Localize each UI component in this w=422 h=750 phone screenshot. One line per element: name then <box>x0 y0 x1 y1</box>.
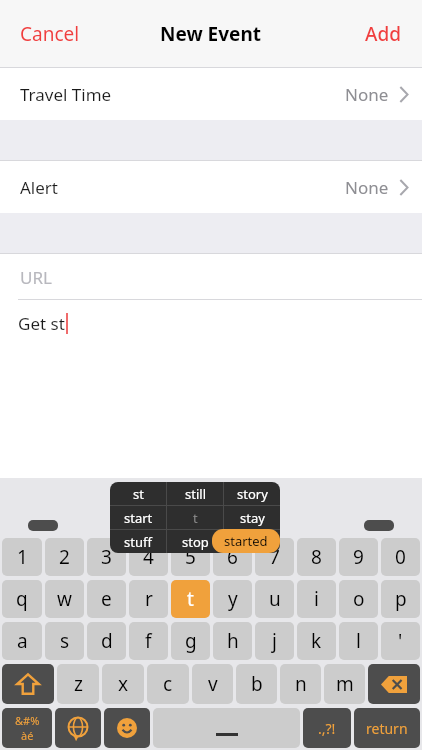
button[interactable]: 4 <box>129 538 168 576</box>
button[interactable]: 7 <box>255 538 294 576</box>
button[interactable]: URL <box>0 254 422 300</box>
button[interactable]: h <box>213 622 252 660</box>
button[interactable]: ' <box>381 622 420 660</box>
staticText: Get st <box>18 312 65 335</box>
staticText: still <box>185 485 206 503</box>
button[interactable]: stop <box>167 530 223 553</box>
staticText: Add <box>365 21 402 47</box>
staticText: x <box>118 671 129 697</box>
staticText: o <box>353 586 365 612</box>
staticText: y <box>228 586 238 612</box>
staticText: 0 <box>395 544 406 570</box>
button[interactable]: 6 <box>213 538 252 576</box>
staticText: a <box>17 628 28 654</box>
button[interactable]: z <box>57 664 99 704</box>
button[interactable]: y <box>213 580 252 618</box>
staticText: g <box>185 628 197 654</box>
staticText: f <box>145 628 152 654</box>
staticText: Travel Time <box>20 83 112 106</box>
button[interactable]: stuff <box>110 530 166 553</box>
button[interactable]: t <box>171 580 210 618</box>
staticText: Cancel <box>20 21 80 47</box>
button[interactable]: Cancel <box>8 13 92 55</box>
staticText: &#% <box>15 713 40 728</box>
button[interactable]: Add <box>353 13 414 55</box>
button[interactable] <box>224 530 280 553</box>
button[interactable]: story <box>224 482 280 505</box>
staticText: 8 <box>311 544 322 570</box>
button[interactable]: start <box>110 506 166 529</box>
staticText: z <box>74 671 83 697</box>
button[interactable]: Alert <box>0 161 422 213</box>
button[interactable]: v <box>192 664 233 704</box>
staticText: None <box>345 83 389 106</box>
button[interactable]: 1 <box>2 538 42 576</box>
staticText: 7 <box>269 544 280 570</box>
button[interactable]: p <box>381 580 420 618</box>
button[interactable]: s <box>45 622 84 660</box>
staticText: l <box>356 628 361 654</box>
button[interactable]: l <box>339 622 378 660</box>
staticText: m <box>336 671 354 697</box>
staticText: story <box>237 485 268 503</box>
button[interactable]: f <box>129 622 168 660</box>
button[interactable]: a <box>2 622 42 660</box>
staticText: q <box>16 586 28 612</box>
staticText: stop <box>182 533 209 551</box>
button[interactable]: Travel Time <box>0 68 422 120</box>
button[interactable]: 0 <box>381 538 420 576</box>
button[interactable]: 8 <box>297 538 336 576</box>
staticText: t <box>193 509 198 527</box>
button[interactable]: Get st <box>0 300 422 346</box>
button[interactable]: n <box>280 664 321 704</box>
button[interactable]: r <box>129 580 168 618</box>
button[interactable]: Change language <box>55 708 101 748</box>
button[interactable]: x <box>102 664 144 704</box>
button[interactable]: 5 <box>171 538 210 576</box>
button[interactable]: k <box>297 622 336 660</box>
staticText: stay <box>240 509 265 527</box>
button[interactable]: Shift <box>2 664 54 704</box>
button[interactable]: u <box>255 580 294 618</box>
button[interactable]: c <box>147 664 189 704</box>
staticText: stuff <box>124 533 152 551</box>
staticText: u <box>269 586 281 612</box>
staticText: e <box>101 586 112 612</box>
button[interactable]: started <box>212 529 280 553</box>
button[interactable]: e <box>87 580 126 618</box>
button[interactable]: return <box>354 708 420 748</box>
staticText: w <box>57 586 72 612</box>
staticText: p <box>395 586 407 612</box>
button[interactable]: m <box>324 664 365 704</box>
staticText: b <box>251 671 263 697</box>
button[interactable]: g <box>171 622 210 660</box>
button[interactable]: 2 <box>45 538 84 576</box>
button[interactable]: Emoji <box>104 708 150 748</box>
staticText: 9 <box>353 544 364 570</box>
button[interactable]: d <box>87 622 126 660</box>
button[interactable]: i <box>297 580 336 618</box>
button[interactable]: Symbols <box>2 708 52 748</box>
button[interactable]: Space <box>153 708 300 748</box>
staticText: 1 <box>17 544 28 570</box>
staticText: s <box>60 628 70 654</box>
button[interactable]: 9 <box>339 538 378 576</box>
staticText: st <box>133 485 144 503</box>
button[interactable]: stay <box>224 506 280 529</box>
staticText: Alert <box>20 176 58 199</box>
button[interactable]: st <box>110 482 166 505</box>
button[interactable]: still <box>167 482 223 505</box>
button[interactable]: 3 <box>87 538 126 576</box>
button[interactable]: o <box>339 580 378 618</box>
staticText: r <box>145 586 153 612</box>
button[interactable]: Backspace <box>368 664 420 704</box>
button[interactable]: .,?! <box>303 708 351 748</box>
staticText: h <box>227 628 239 654</box>
button[interactable]: b <box>236 664 277 704</box>
button[interactable]: w <box>45 580 84 618</box>
button[interactable]: t <box>167 506 223 529</box>
button[interactable]: j <box>255 622 294 660</box>
staticText: 5 <box>185 544 196 570</box>
staticText: àé <box>21 728 34 743</box>
button[interactable]: q <box>2 580 42 618</box>
